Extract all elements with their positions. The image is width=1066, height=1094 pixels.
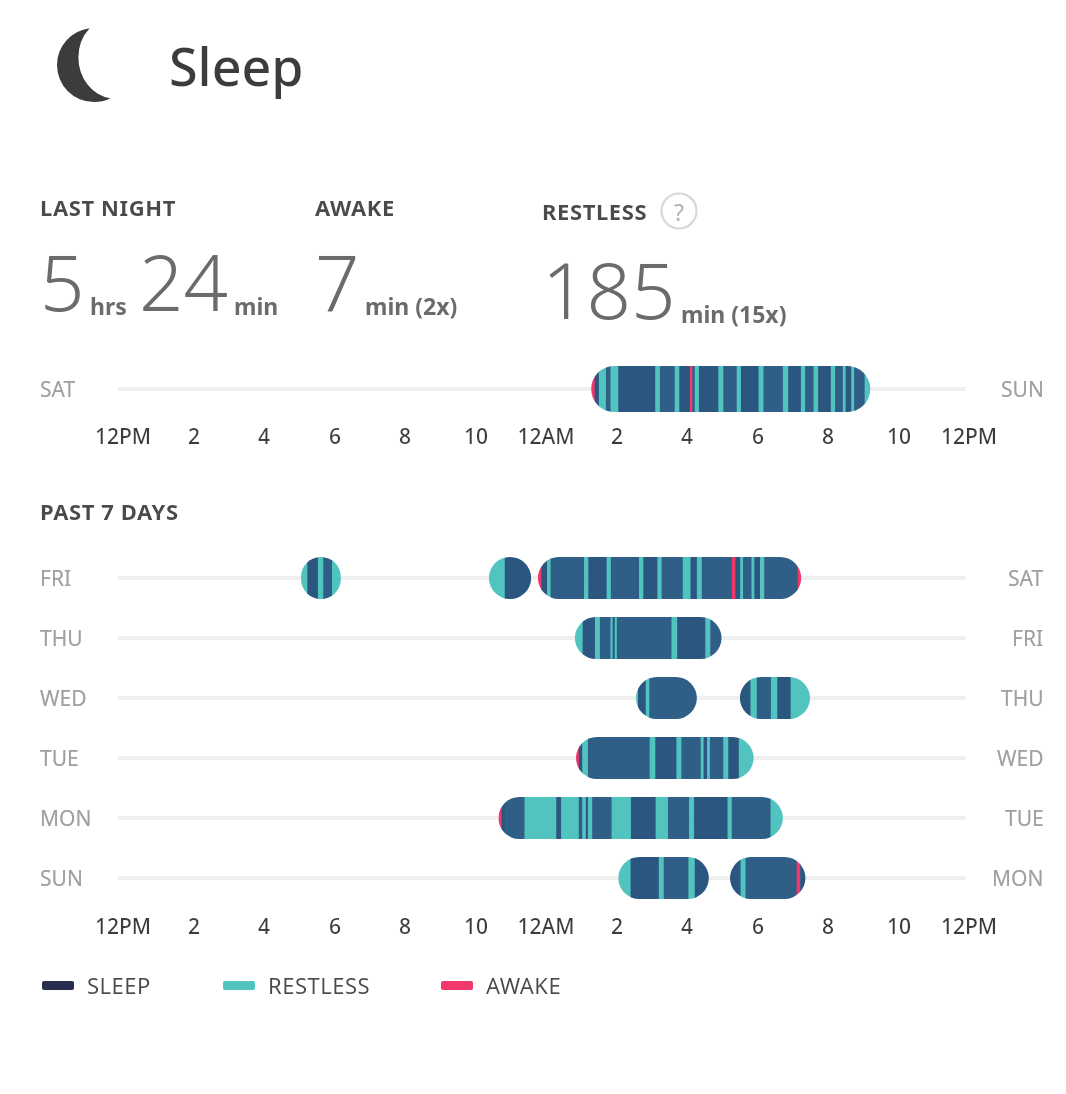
staticText: 8 bbox=[365, 422, 445, 451]
button[interactable]: MON bbox=[0, 788, 1066, 848]
staticText: WED bbox=[40, 684, 87, 713]
staticText: 12AM bbox=[506, 422, 586, 451]
button[interactable]: SLEEP bbox=[42, 970, 151, 1000]
button[interactable]: WED bbox=[0, 668, 1066, 728]
staticText: 10 bbox=[436, 912, 516, 941]
staticText: SLEEP bbox=[87, 970, 151, 1000]
staticText: 6 bbox=[718, 912, 798, 941]
staticText: min bbox=[234, 290, 279, 321]
staticText: MON bbox=[992, 864, 1044, 893]
staticText: FRI bbox=[40, 564, 72, 593]
staticText: MON bbox=[40, 804, 92, 833]
button[interactable]: RESTLESS bbox=[223, 970, 371, 1000]
staticText: 2 bbox=[577, 912, 657, 941]
staticText: 8 bbox=[788, 912, 868, 941]
staticText: RESTLESS bbox=[268, 970, 371, 1000]
staticText: FRI bbox=[1012, 624, 1044, 653]
staticText: 5 bbox=[40, 228, 85, 334]
button[interactable]: AWAKE bbox=[441, 970, 562, 1000]
staticText: 10 bbox=[859, 912, 939, 941]
staticText: LAST NIGHT bbox=[40, 192, 176, 222]
staticText: min (15x) bbox=[681, 298, 787, 329]
button[interactable]: TUE bbox=[0, 728, 1066, 788]
staticText: 4 bbox=[647, 912, 727, 941]
staticText: 2 bbox=[154, 422, 234, 451]
staticText: 12AM bbox=[506, 912, 586, 941]
staticText: 10 bbox=[436, 422, 516, 451]
staticText: 7 bbox=[315, 228, 360, 334]
staticText: Sleep bbox=[169, 30, 304, 101]
staticText: min (2x) bbox=[365, 290, 458, 321]
staticText: 185 bbox=[542, 236, 676, 342]
staticText: 6 bbox=[718, 422, 798, 451]
staticText: PAST 7 DAYS bbox=[40, 496, 179, 526]
staticText: AWAKE bbox=[486, 970, 562, 1000]
staticText: 2 bbox=[154, 912, 234, 941]
staticText: 6 bbox=[295, 422, 375, 451]
staticText: RESTLESS bbox=[542, 196, 648, 226]
staticText: SUN bbox=[40, 864, 83, 893]
button[interactable]: What is restless? bbox=[660, 192, 698, 230]
staticText: AWAKE bbox=[315, 192, 395, 222]
staticText: TUE bbox=[40, 744, 79, 773]
staticText: 4 bbox=[647, 422, 727, 451]
staticText: 12PM bbox=[83, 422, 163, 451]
staticText: SAT bbox=[1008, 564, 1044, 593]
staticText: 12PM bbox=[929, 422, 1009, 451]
staticText: 6 bbox=[295, 912, 375, 941]
staticText: WED bbox=[997, 744, 1044, 773]
staticText: THU bbox=[1001, 684, 1044, 713]
staticText: THU bbox=[40, 624, 83, 653]
staticText: 24 bbox=[139, 228, 229, 334]
button[interactable]: THU bbox=[0, 608, 1066, 668]
button[interactable]: SUN bbox=[0, 848, 1066, 908]
staticText: 2 bbox=[577, 422, 657, 451]
staticText: TUE bbox=[1005, 804, 1044, 833]
staticText: 8 bbox=[788, 422, 868, 451]
staticText: 12PM bbox=[929, 912, 1009, 941]
staticText: 10 bbox=[859, 422, 939, 451]
staticText: 4 bbox=[224, 912, 304, 941]
staticText: 8 bbox=[365, 912, 445, 941]
button[interactable]: FRI bbox=[0, 548, 1066, 608]
staticText: 4 bbox=[224, 422, 304, 451]
button[interactable]: SAT bbox=[0, 360, 1066, 418]
staticText: 12PM bbox=[83, 912, 163, 941]
staticText: SAT bbox=[40, 375, 76, 404]
staticText: SUN bbox=[1001, 375, 1044, 404]
staticText: hrs bbox=[90, 290, 127, 321]
staticText: ? bbox=[674, 196, 684, 227]
